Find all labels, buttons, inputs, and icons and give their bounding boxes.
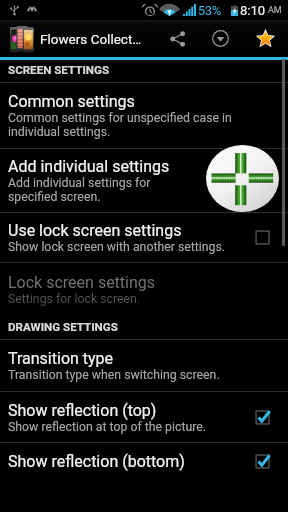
staticText: Show reflection (bottom) <box>8 452 185 471</box>
button[interactable]: Download <box>199 20 242 57</box>
button[interactable]: Transition type <box>0 340 288 392</box>
staticText: Add individual settings for specified sc… <box>8 176 151 204</box>
button[interactable]: Favorite <box>242 20 288 57</box>
staticText: AM <box>268 5 282 16</box>
staticText: Show lock screen with another settings. <box>8 240 226 254</box>
button[interactable]: Add individual settings <box>0 149 288 213</box>
button[interactable]: Share <box>156 20 199 57</box>
staticText: Flowers Collect… <box>40 31 142 47</box>
staticText: Transition type <box>8 349 114 368</box>
button[interactable]: App icon <box>10 26 34 52</box>
staticText: 53% <box>198 3 222 18</box>
staticText: Common settings for unspecified case in … <box>8 111 232 139</box>
button[interactable]: Lock screen settings <box>0 263 288 315</box>
button[interactable]: Show reflection (top) <box>0 392 288 443</box>
button[interactable]: Use lock screen settings <box>0 213 288 263</box>
staticText: Transition type when switching screen. <box>8 368 220 382</box>
staticText: Show reflection at top of the picture. <box>8 420 207 434</box>
staticText: Common settings <box>8 92 135 111</box>
staticText: 8:10 <box>240 3 266 18</box>
button[interactable]: Common settings <box>0 83 288 149</box>
button[interactable]: Show reflection (bottom) <box>0 443 288 479</box>
staticText: SCREEN SETTINGS <box>8 63 110 77</box>
staticText: Lock screen settings <box>8 273 156 292</box>
staticText: Use lock screen settings <box>8 221 182 240</box>
staticText: DRAWING SETTINGS <box>8 320 118 334</box>
staticText: Add individual settings <box>8 157 170 176</box>
staticText: Show reflection (top) <box>8 401 157 420</box>
staticText: Settings for lock screen. <box>8 292 141 306</box>
